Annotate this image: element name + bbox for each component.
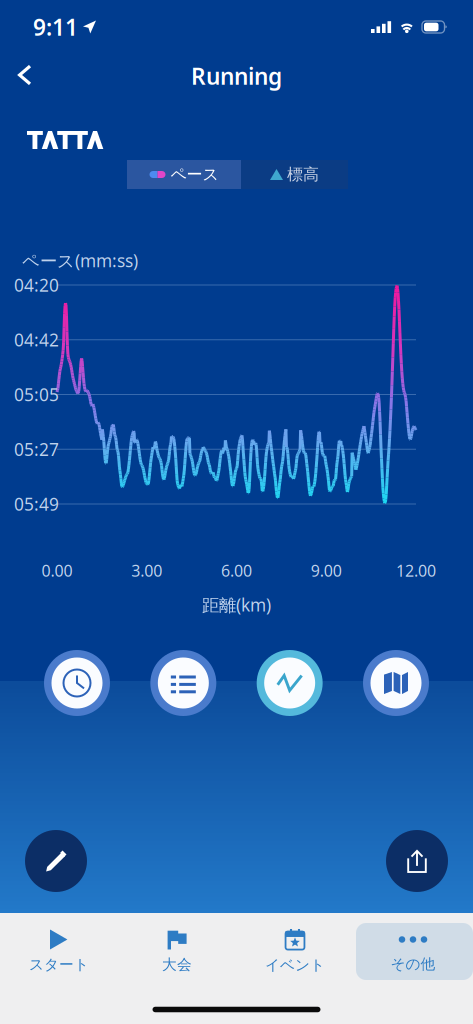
button[interactable]: その他	[354, 923, 472, 980]
staticText: 05:05	[14, 383, 59, 406]
staticText: その他	[390, 955, 435, 973]
staticText: 04:20	[14, 273, 59, 296]
button[interactable]: Back	[0, 54, 56, 98]
button[interactable]: Edit	[25, 830, 87, 892]
button[interactable]: ペース	[127, 160, 241, 189]
staticText: ペース	[170, 165, 218, 184]
button[interactable]: イベント	[236, 923, 354, 980]
button[interactable]: Chart	[257, 650, 323, 716]
staticText: 標高	[287, 165, 319, 184]
staticText: スタート	[29, 955, 89, 973]
button[interactable]: Share	[386, 830, 448, 892]
button[interactable]: Splits	[150, 650, 216, 716]
staticText: 大会	[162, 955, 192, 973]
staticText: 12.00	[396, 560, 436, 581]
staticText: 9:11	[33, 12, 78, 42]
staticText: 3.00	[131, 560, 162, 581]
staticText: 距離(km)	[202, 593, 271, 616]
button[interactable]: Time	[44, 650, 110, 716]
staticText: Running	[191, 61, 282, 91]
staticText: 05:49	[14, 492, 59, 515]
staticText: イベント	[265, 956, 325, 974]
button[interactable]: スタート	[0, 923, 118, 980]
staticText: 9.00	[311, 560, 342, 581]
staticText: 05:27	[14, 438, 59, 461]
staticText: ペース(mm:ss)	[22, 249, 138, 272]
button[interactable]: 標高	[241, 160, 348, 189]
button[interactable]: 大会	[118, 923, 236, 980]
staticText: 6.00	[221, 560, 252, 581]
staticText: 0.00	[41, 560, 72, 581]
staticText: 04:42	[14, 328, 59, 351]
button[interactable]: Map	[363, 650, 429, 716]
